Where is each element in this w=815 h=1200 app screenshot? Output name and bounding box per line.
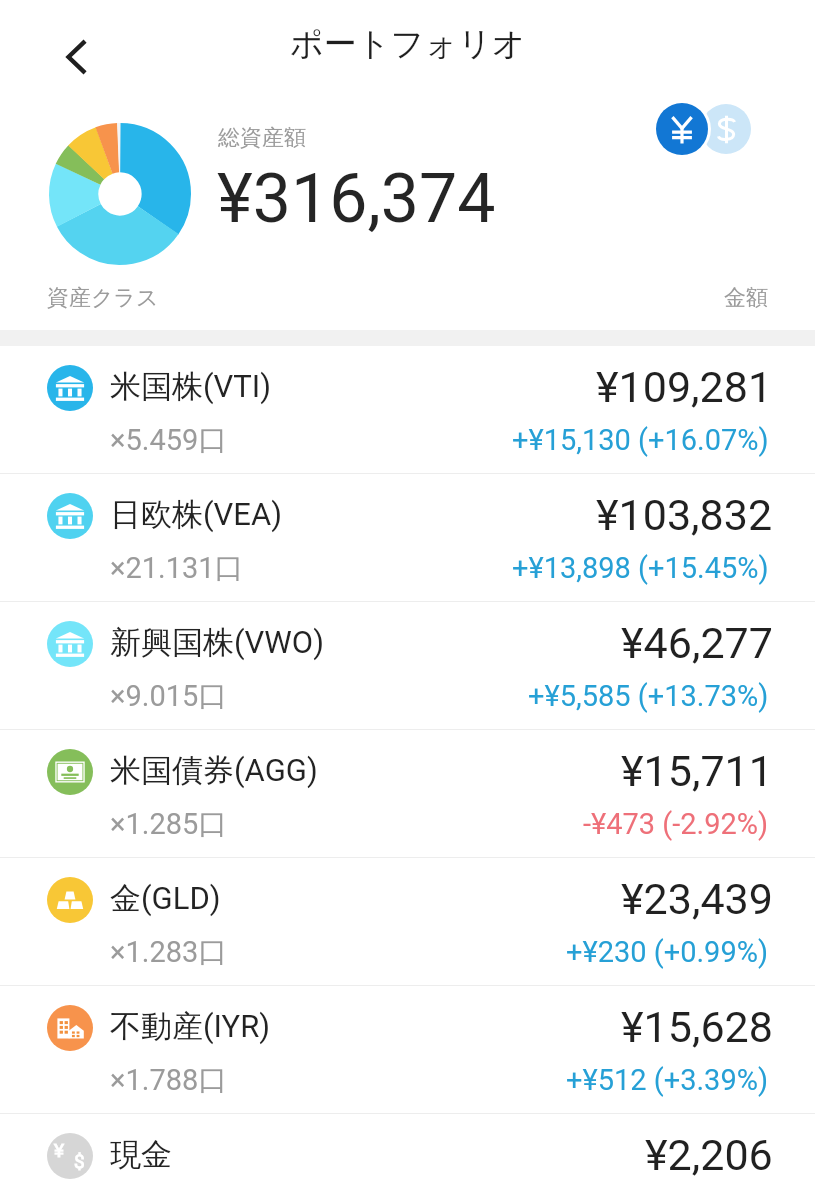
staticText: ×1.788口: [110, 1062, 228, 1099]
staticText: ¥316,374: [217, 159, 496, 239]
staticText: 米国株(VTI): [110, 367, 272, 406]
staticText: ×5.459口: [110, 422, 228, 459]
staticText: 米国債券(AGG): [110, 751, 318, 790]
button[interactable]: Switch to US dollar: [701, 104, 751, 154]
staticText: ×9.015口: [110, 678, 228, 715]
staticText: ¥15,711: [621, 746, 773, 796]
staticText: +¥13,898 (+15.45%): [512, 551, 769, 585]
button[interactable]: ¥: [0, 1114, 815, 1200]
staticText: ¥103,832: [596, 490, 773, 540]
button[interactable]: 米国株(VTI): [0, 346, 815, 473]
button[interactable]: 新興国株(VWO): [0, 602, 815, 729]
staticText: ¥46,277: [621, 618, 773, 668]
staticText: 現金: [110, 1135, 172, 1174]
staticText: ¥109,281: [596, 362, 773, 412]
button[interactable]: 日欧株(VEA): [0, 474, 815, 601]
staticText: ¥23,439: [621, 874, 773, 924]
staticText: ポートフォリオ: [290, 23, 526, 65]
button[interactable]: 金(GLD): [0, 858, 815, 985]
staticText: 総資産額: [218, 124, 306, 152]
staticText: ¥: [54, 1139, 64, 1161]
staticText: +¥5,585 (+13.73%): [528, 679, 769, 713]
staticText: 新興国株(VWO): [110, 623, 324, 662]
staticText: 日欧株(VEA): [110, 495, 282, 534]
button[interactable]: 不動産(IYR): [0, 986, 815, 1113]
staticText: ×1.285口: [110, 806, 228, 843]
button[interactable]: Japanese yen selected: [656, 103, 708, 155]
staticText: 金額: [724, 284, 768, 312]
staticText: 不動産(IYR): [110, 1007, 271, 1046]
staticText: $: [74, 1150, 85, 1172]
staticText: +¥15,130 (+16.07%): [512, 423, 769, 457]
staticText: -¥473 (-2.92%): [583, 807, 769, 841]
staticText: ×1.283口: [110, 934, 228, 971]
staticText: +¥512 (+3.39%): [566, 1063, 769, 1097]
staticText: 金(GLD): [110, 879, 221, 918]
staticText: +¥230 (+0.99%): [566, 935, 769, 969]
staticText: ¥15,628: [621, 1002, 773, 1052]
staticText: 資産クラス: [47, 284, 159, 312]
button[interactable]: Back: [36, 17, 116, 97]
staticText: ×21.131口: [110, 550, 244, 587]
staticText: ¥2,206: [645, 1130, 773, 1180]
button[interactable]: 米国債券(AGG): [0, 730, 815, 857]
